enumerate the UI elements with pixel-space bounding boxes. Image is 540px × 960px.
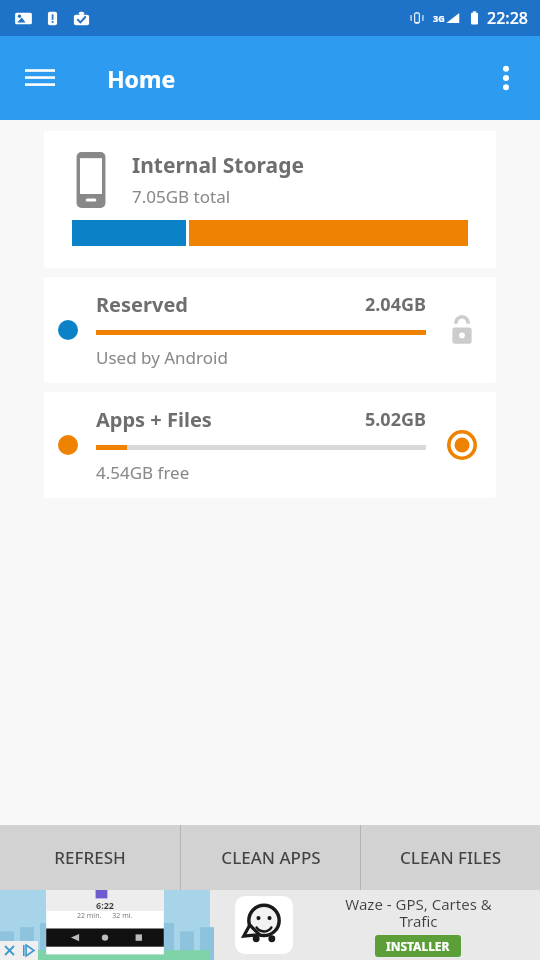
button[interactable]: INSTALLER (375, 935, 461, 957)
staticText: CLEAN APPS (221, 846, 321, 869)
button[interactable]: Ad choices (19, 941, 38, 960)
staticText: 7.05GB total (132, 185, 231, 208)
button[interactable]: Locked (440, 308, 484, 352)
staticText: 6:22 (96, 899, 114, 911)
staticText: 3G (433, 12, 445, 24)
staticText: Used by Android (96, 346, 228, 369)
button[interactable]: Internal Storage (44, 131, 496, 268)
staticText: 22:28 (487, 7, 528, 29)
button[interactable]: Apps and files selected (440, 423, 484, 467)
staticText: Waze - GPS, Cartes & Trafic (345, 894, 492, 932)
button[interactable]: Reserved (44, 277, 496, 383)
button[interactable]: Close ad (0, 941, 19, 960)
staticText: 22 min. 32 mi. (77, 911, 133, 921)
button[interactable]: CLEAN FILES (361, 825, 540, 890)
staticText: CLEAN FILES (400, 846, 501, 869)
button[interactable]: Open navigation drawer (16, 54, 64, 102)
button[interactable]: REFRESH (0, 825, 180, 890)
button[interactable]: Apps + Files (44, 392, 496, 498)
staticText: 2.04GB (365, 292, 426, 317)
staticText: Internal Storage (132, 151, 304, 180)
button[interactable]: CLEAN APPS (181, 825, 360, 890)
staticText: 4.54GB free (96, 461, 190, 484)
staticText: Apps + Files (96, 406, 212, 433)
staticText: REFRESH (54, 846, 126, 869)
staticText: 5.02GB (365, 407, 426, 432)
staticText: INSTALLER (386, 938, 450, 954)
staticText: Home (107, 63, 176, 94)
button[interactable]: More options (482, 54, 530, 102)
staticText: Reserved (96, 291, 188, 318)
